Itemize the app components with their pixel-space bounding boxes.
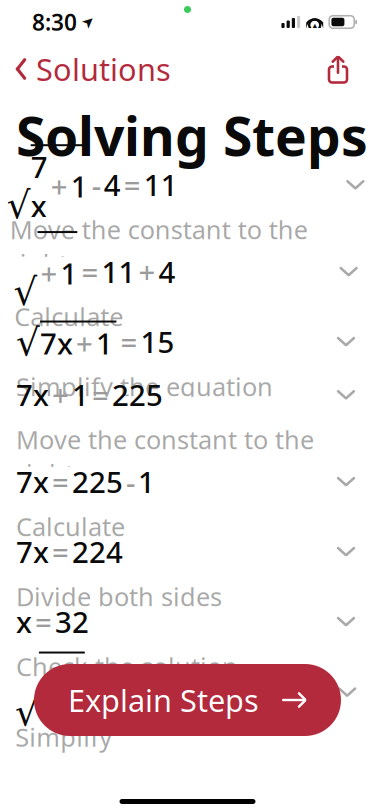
staticText: 7x [31, 147, 48, 225]
staticText: 4 [104, 165, 121, 204]
staticText: + [76, 323, 93, 362]
staticText: - [89, 672, 98, 711]
staticText: = [121, 672, 138, 711]
staticText: 7x [16, 532, 49, 571]
staticText: ▲ [311, 21, 318, 32]
staticText: ➤ [82, 14, 94, 30]
button[interactable]: Solutions [0, 43, 171, 95]
staticText: Check the solution [16, 649, 238, 683]
button[interactable]: 7x [0, 397, 375, 467]
staticText: Calculate [14, 299, 123, 333]
staticText: 7x [40, 323, 73, 362]
staticText: 225 [72, 462, 123, 501]
button[interactable]: √ [0, 257, 375, 327]
staticText: 225 [112, 375, 163, 414]
staticText: × [59, 674, 76, 713]
staticText: 4 [158, 252, 175, 291]
button[interactable]: x [0, 607, 375, 677]
staticText: 7x [16, 375, 49, 414]
staticText: 11 [101, 252, 135, 291]
staticText: + [40, 253, 57, 292]
staticText: 4 [101, 672, 118, 711]
staticText: 1 [72, 375, 89, 414]
staticText: Explain Steps [68, 680, 259, 720]
staticText: Move the constant to the right [10, 213, 308, 280]
staticText: 1 [60, 253, 77, 292]
staticText: Calculate [16, 509, 125, 543]
staticText: 1 [96, 323, 113, 362]
button[interactable]: √ [0, 677, 375, 747]
staticText: + [52, 375, 69, 414]
staticText: = [124, 165, 141, 204]
staticText: 15 [140, 322, 174, 361]
staticText: Move the constant to the right [16, 423, 314, 490]
staticText: = [52, 462, 69, 501]
staticText: 1 [138, 462, 155, 501]
button[interactable]: √ [0, 327, 375, 397]
staticText: √ [16, 321, 40, 363]
staticText: √ [13, 271, 37, 313]
staticText: 1 [71, 167, 88, 206]
staticText: 224 [72, 532, 123, 571]
staticText: √ [7, 184, 31, 226]
staticText: 7 [39, 674, 56, 713]
staticText: = [92, 375, 109, 414]
staticText: = [52, 532, 69, 571]
staticText: Simplify the equation [16, 369, 273, 403]
staticText: 8:30 [32, 7, 77, 37]
staticText: Divide both sides [16, 579, 222, 613]
staticText: 7x [16, 462, 49, 501]
staticText: Solving Steps [16, 100, 368, 171]
staticText: + [51, 167, 68, 206]
staticText: 11 [144, 165, 178, 204]
staticText: - [92, 165, 101, 204]
staticText: Simplify [15, 720, 112, 754]
button[interactable]: Explain Steps [34, 664, 341, 736]
staticText: √ [15, 691, 39, 733]
staticText: x [16, 602, 32, 641]
staticText: = [35, 602, 52, 641]
staticText: + [138, 252, 155, 291]
button[interactable]: 7x [0, 537, 375, 607]
staticText: 32 [55, 602, 89, 641]
staticText: = [120, 322, 137, 361]
staticText: - [126, 462, 135, 501]
staticText: Solutions [36, 49, 171, 89]
staticText: 11 [141, 672, 175, 711]
staticText: = [81, 252, 98, 291]
button[interactable]: Share [311, 48, 365, 90]
button[interactable]: √ [0, 187, 375, 257]
button[interactable]: 7x [0, 467, 375, 537]
